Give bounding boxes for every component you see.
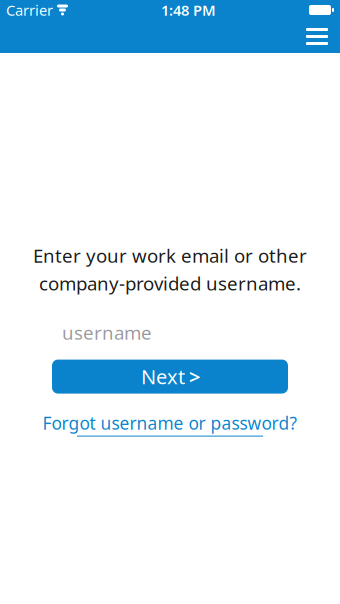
staticText: Enter your work email or other	[33, 243, 307, 268]
button[interactable]: username	[52, 318, 288, 348]
staticText: company-provided username.	[39, 271, 301, 296]
button[interactable]: Menu	[299, 22, 335, 51]
button[interactable]: Next	[52, 360, 288, 394]
button[interactable]: Forgot username or password?	[42, 410, 297, 439]
staticText: username	[62, 320, 152, 345]
staticText: Next	[141, 363, 185, 390]
staticText: >	[189, 363, 200, 390]
staticText: Carrier	[6, 0, 53, 20]
staticText: Forgot username or password?	[42, 412, 297, 435]
staticText: 1:48 PM	[161, 0, 216, 20]
